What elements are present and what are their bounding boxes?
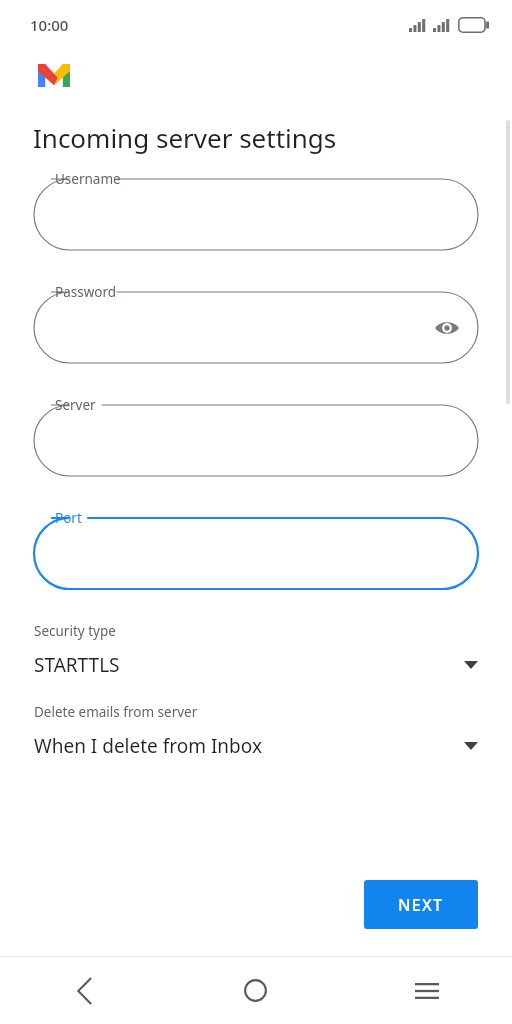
- button[interactable]: Delete emails from server: [0, 703, 512, 759]
- staticText: NEXT: [398, 894, 444, 916]
- staticText: When I delete from Inbox: [34, 733, 464, 759]
- staticText: STARTTLS: [34, 652, 464, 678]
- button[interactable]: Recent apps: [341, 957, 512, 1024]
- button[interactable]: Back: [0, 957, 170, 1024]
- button[interactable]: Server: [34, 405, 478, 476]
- button[interactable]: Port: [34, 518, 478, 589]
- button[interactable]: Password: [34, 292, 478, 363]
- button[interactable]: Security type: [0, 622, 512, 678]
- button[interactable]: Show password: [429, 310, 465, 346]
- staticText: Delete emails from server: [34, 703, 198, 721]
- button[interactable]: NEXT: [364, 880, 478, 929]
- staticText: Incoming server settings: [33, 120, 337, 155]
- staticText: Username: [55, 170, 121, 188]
- staticText: Server: [55, 396, 96, 414]
- staticText: Port: [55, 509, 82, 527]
- button[interactable]: Username: [34, 179, 478, 250]
- staticText: 10:00: [30, 15, 69, 35]
- staticText: Security type: [34, 622, 116, 640]
- staticText: Password: [55, 283, 117, 301]
- button[interactable]: Home: [170, 957, 341, 1024]
